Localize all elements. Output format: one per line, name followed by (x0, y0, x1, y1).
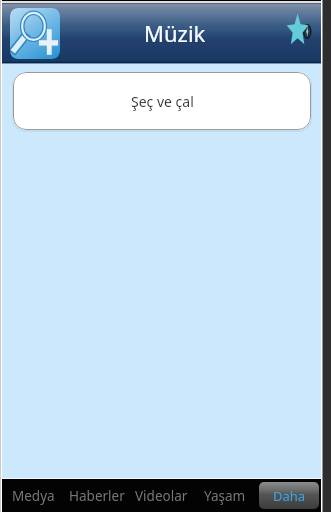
staticText: Yaşam (204, 487, 246, 505)
button[interactable]: Yaşam (193, 479, 257, 512)
button[interactable]: Favorites (284, 12, 316, 52)
button[interactable]: Search (10, 8, 60, 59)
button[interactable]: Haberler (65, 479, 129, 512)
button[interactable]: Daha (259, 482, 319, 509)
button[interactable]: Şeç ve çal (13, 72, 311, 130)
staticText: Medya (12, 487, 55, 505)
staticText: Müzik (144, 18, 206, 48)
button[interactable]: Videolar (129, 479, 193, 512)
staticText: Videolar (135, 487, 188, 505)
staticText: Haberler (69, 487, 125, 505)
button[interactable]: Medya (2, 479, 65, 512)
staticText: Şeç ve çal (131, 92, 194, 111)
staticText: Daha (273, 487, 306, 505)
